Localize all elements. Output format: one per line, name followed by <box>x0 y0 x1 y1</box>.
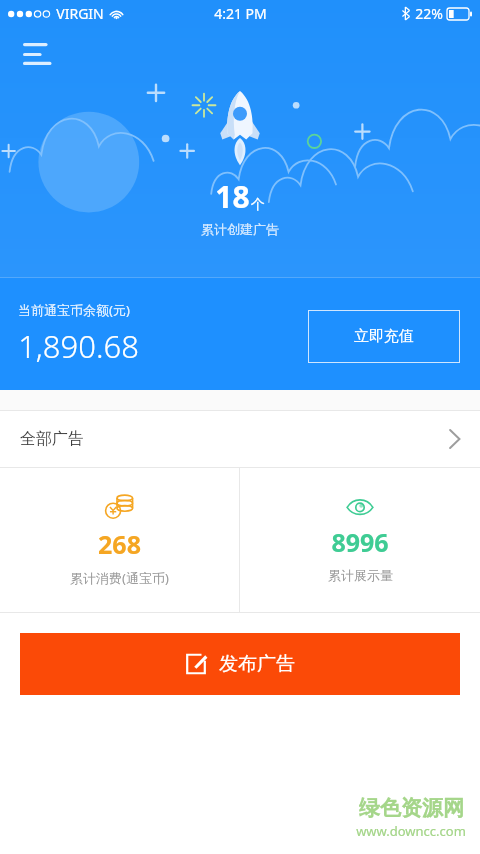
button[interactable]: 8996 <box>240 468 480 612</box>
button[interactable]: 268 <box>0 468 239 612</box>
staticText: 累计创建广告 <box>201 221 279 237</box>
staticText: 22% <box>415 4 443 23</box>
staticText: 4:21 PM <box>214 4 267 23</box>
staticText: 绿色资源网 <box>359 795 464 821</box>
staticText: 立即充值 <box>354 327 414 346</box>
staticText: 累计展示量 <box>328 567 393 583</box>
button[interactable]: 全部广告 <box>0 411 480 467</box>
staticText: 18 <box>215 176 250 217</box>
staticText: VIRGIN <box>56 4 104 23</box>
button[interactable]: 发布广告 <box>20 633 460 695</box>
staticText: 8996 <box>331 525 389 559</box>
staticText: 个 <box>251 196 265 214</box>
staticText: 全部广告 <box>20 429 84 449</box>
staticText: 发布广告 <box>219 652 295 676</box>
staticText: 268 <box>98 527 141 561</box>
button[interactable]: Menu <box>14 30 62 78</box>
staticText: 1,890.68 <box>18 325 139 367</box>
staticText: www.downcc.com <box>356 822 466 840</box>
staticText: 累计消费(通宝币) <box>70 569 169 587</box>
button[interactable]: 立即充值 <box>308 310 460 363</box>
staticText: 当前通宝币余额(元) <box>18 301 130 319</box>
